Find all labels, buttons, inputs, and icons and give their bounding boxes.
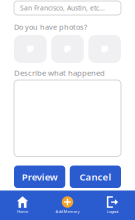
button[interactable]: Add photo — [88, 35, 121, 63]
staticText: Logout — [107, 209, 118, 214]
button[interactable]: Home — [0, 196, 45, 214]
staticText: Home — [17, 209, 28, 214]
staticText: Add Memory — [55, 209, 79, 214]
staticText: Describe what happened — [14, 67, 105, 78]
button[interactable]: Cancel — [70, 165, 121, 188]
button[interactable]: San Francisco, Austin, etc... — [14, 1, 121, 15]
button[interactable]: Preview — [14, 165, 65, 188]
button[interactable]: Logout — [90, 196, 135, 214]
staticText: San Francisco, Austin, etc... — [20, 3, 105, 13]
button[interactable]: Add photo — [51, 35, 84, 63]
staticText: Preview — [22, 170, 58, 183]
staticText: Do you have photos? — [14, 22, 87, 32]
button[interactable]: Add photo — [14, 35, 47, 63]
staticText: Cancel — [79, 170, 111, 183]
button[interactable]: Add Memory — [45, 196, 90, 214]
